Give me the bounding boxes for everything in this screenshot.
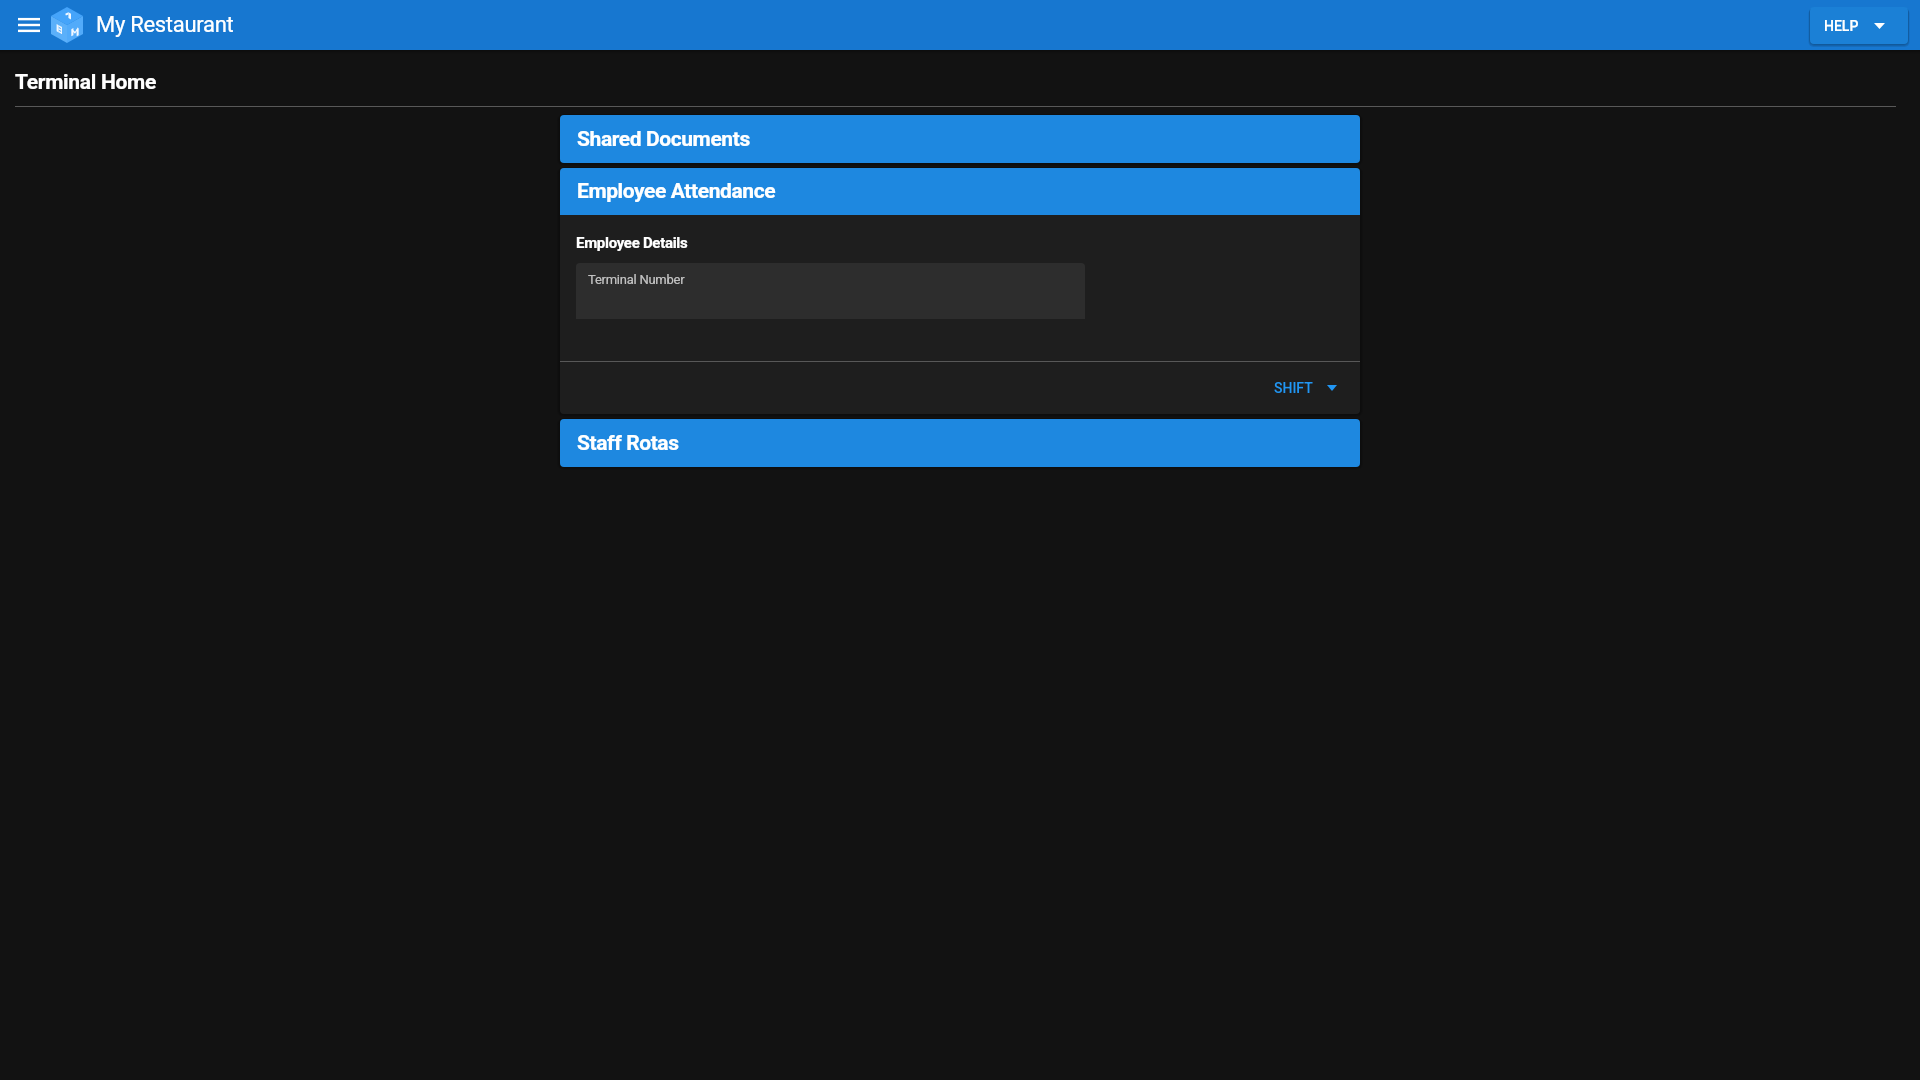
staticText: HELP [1824, 18, 1859, 34]
staticText: Employee Details [576, 234, 688, 252]
button[interactable]: Terminal Number [576, 263, 1085, 319]
button[interactable]: Staff Rotas [560, 419, 1360, 467]
staticText: Shared Documents [577, 127, 750, 152]
button[interactable]: SHIFT [1262, 372, 1360, 404]
staticText: Employee Attendance [577, 179, 776, 204]
staticText: Terminal Home [15, 70, 156, 95]
staticText: Staff Rotas [577, 431, 679, 456]
staticText: SHIFT [1274, 380, 1313, 396]
button[interactable]: Employee Attendance [560, 168, 1360, 215]
button[interactable]: HELP [1810, 7, 1908, 44]
staticText: Terminal Number [588, 272, 685, 287]
button[interactable]: Shared Documents [560, 115, 1360, 163]
staticText: My Restaurant [96, 12, 234, 38]
button[interactable]: Open navigation menu [7, 3, 51, 47]
